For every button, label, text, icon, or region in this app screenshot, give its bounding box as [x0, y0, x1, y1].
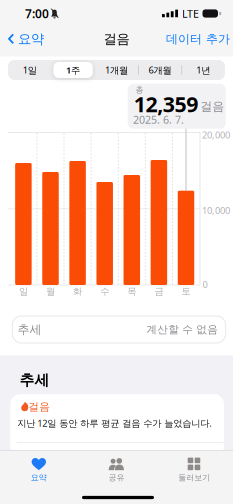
button[interactable]: 요약 [7, 29, 45, 49]
staticText: 지난 12일 동안 하루 평균 걸음 수가 늘었습니다. [17, 417, 212, 429]
button[interactable]: 1년 [182, 60, 225, 80]
button[interactable]: 데이터 추가 [166, 29, 230, 49]
staticText: 토 [181, 286, 190, 297]
staticText: 걸음 [200, 99, 224, 114]
staticText: 데이터 추가 [166, 32, 230, 46]
staticText: 0 [202, 278, 207, 291]
button[interactable]: 걸음 [10, 394, 224, 456]
staticText: 화 [73, 286, 82, 297]
staticText: 수 [100, 286, 109, 297]
staticText: 요약 [18, 31, 44, 47]
staticText: 계산할 수 없음 [146, 323, 218, 336]
button[interactable]: 둘러보기 [159, 453, 229, 487]
staticText: 일 [19, 286, 28, 297]
staticText: 1일 [23, 64, 37, 76]
staticText: 6개월 [148, 64, 171, 76]
staticText: 월 [46, 286, 55, 297]
staticText: 7:00 [25, 5, 49, 21]
staticText: LTE [182, 6, 199, 21]
staticText: 10,000 [202, 204, 230, 217]
staticText: 요약 [31, 473, 47, 482]
button[interactable]: 1개월 [95, 60, 138, 80]
button[interactable]: 추세 [12, 316, 226, 343]
button[interactable]: 6개월 [138, 60, 181, 80]
staticText: 걸음 [103, 31, 129, 47]
staticText: 2025. 6. 7. [133, 112, 184, 127]
button[interactable]: 공유 [81, 453, 151, 487]
staticText: 금 [154, 286, 163, 297]
staticText: 추세 [19, 371, 49, 389]
staticText: 둘러보기 [178, 473, 210, 482]
staticText: 걸음 [28, 400, 50, 413]
staticText: 목 [127, 286, 136, 297]
staticText: 1개월 [105, 64, 128, 76]
button[interactable]: 요약 [4, 453, 74, 487]
staticText: 공유 [108, 473, 124, 482]
button[interactable]: 1일 [8, 60, 51, 80]
staticText: 1주 [66, 64, 80, 76]
staticText: 1년 [196, 64, 210, 76]
button[interactable]: 1주 [52, 60, 95, 80]
staticText: 총 [135, 85, 143, 95]
staticText: 추세 [17, 322, 41, 337]
staticText: 12,359 [134, 90, 198, 118]
staticText: 20,000 [202, 129, 230, 141]
